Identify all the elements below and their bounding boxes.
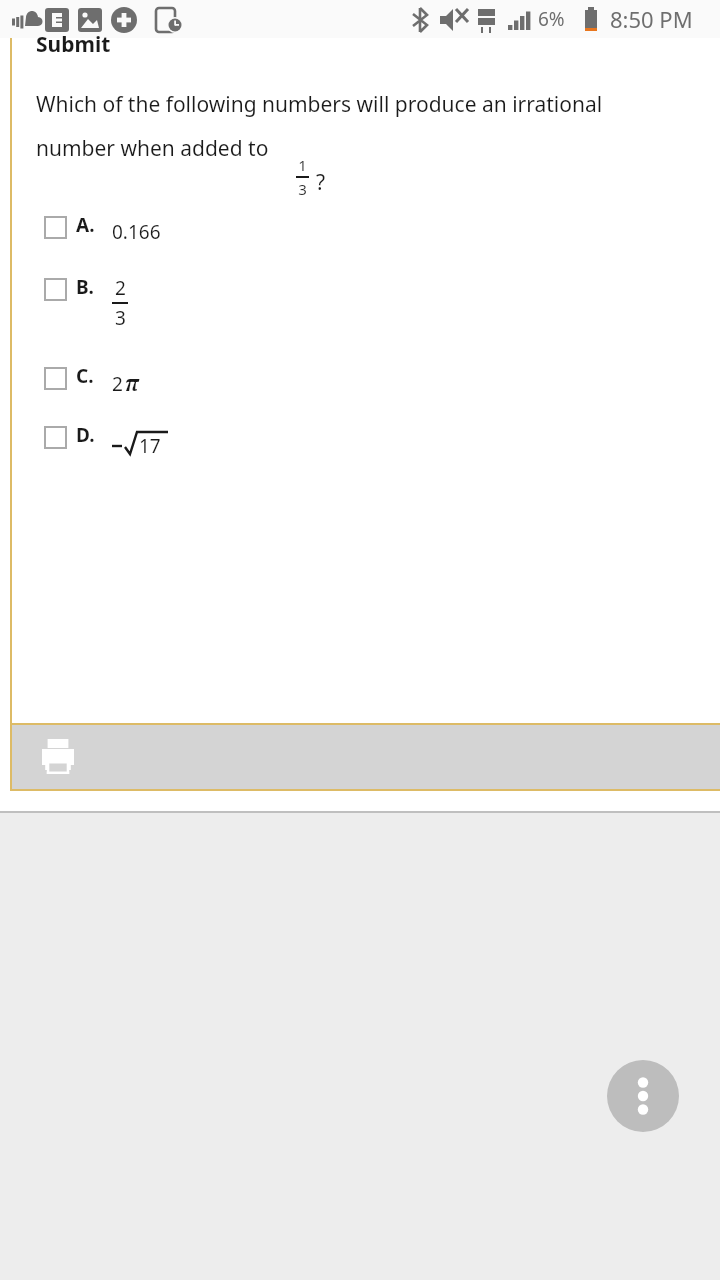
staticText: 8:50 PM [610, 4, 693, 34]
staticText: 0.166 [112, 219, 161, 245]
staticText: Submit [36, 30, 111, 59]
button[interactable]: More options [607, 1060, 679, 1132]
button[interactable]: A. [36, 211, 720, 257]
staticText: 17 [139, 433, 161, 459]
staticText: D. [76, 422, 95, 448]
staticText: 1 [298, 155, 307, 175]
staticText: 6% [538, 6, 565, 32]
staticText: Which of the following numbers will prod… [36, 90, 603, 162]
staticText: ? [316, 168, 326, 197]
button[interactable]: Print [32, 733, 84, 781]
staticText: 3 [298, 179, 307, 199]
staticText: 3 [115, 305, 126, 331]
staticText: 2 [112, 371, 123, 397]
staticText: C. [76, 363, 94, 389]
staticText: 2 [115, 275, 126, 301]
button[interactable]: B. [36, 273, 720, 319]
button[interactable]: Submit [36, 30, 111, 59]
button[interactable]: D. [36, 421, 720, 467]
staticText: π [125, 369, 139, 398]
staticText: B. [76, 274, 94, 300]
staticText: A. [76, 212, 95, 238]
button[interactable]: C. [36, 362, 720, 408]
